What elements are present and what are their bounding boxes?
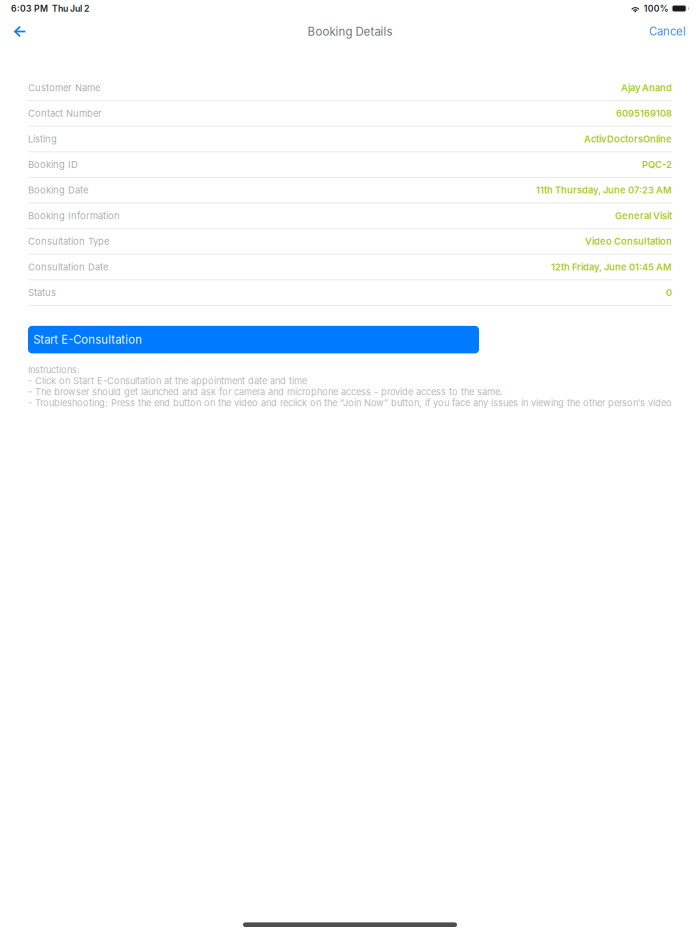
staticText: 11th Thursday, June 07:23 AM <box>536 185 672 196</box>
staticText: Instructions: <box>28 364 80 376</box>
staticText: - The browser should get launched and as… <box>28 386 503 398</box>
staticText: Status <box>28 287 56 298</box>
staticText: 100% <box>644 3 669 14</box>
staticText: Consultation Type <box>28 236 109 247</box>
staticText: ActivDoctorsOnline <box>584 133 672 145</box>
staticText: Customer Name <box>28 82 100 93</box>
staticText: 0 <box>666 287 672 298</box>
staticText: Video Consultation <box>585 236 672 247</box>
staticText: PQC-2 <box>642 159 672 170</box>
staticText: 6095169108 <box>616 108 672 119</box>
button[interactable]: Cancel <box>637 18 700 45</box>
staticText: Booking Details <box>307 25 392 38</box>
staticText: Booking Information <box>28 210 120 221</box>
staticText: Ajay Anand <box>621 82 672 93</box>
staticText: Cancel <box>649 25 686 38</box>
button[interactable]: Start E-Consultation <box>28 326 479 353</box>
staticText: Thu Jul 2 <box>52 3 89 14</box>
staticText: Contact Number <box>28 108 102 119</box>
staticText: General Visit <box>615 210 672 221</box>
staticText: Start E-Consultation <box>33 333 142 346</box>
staticText: - Click on Start E-Consultation at the a… <box>28 375 307 387</box>
staticText: Consultation Date <box>28 261 108 273</box>
staticText: 6:03 PM <box>11 3 48 14</box>
staticText: Booking ID <box>28 159 78 170</box>
staticText: - Troubleshooting: Press the end button … <box>28 397 672 408</box>
button[interactable]: Back <box>0 18 38 44</box>
staticText: 12th Friday, June 01:45 AM <box>551 261 672 273</box>
staticText: Booking Date <box>28 185 88 196</box>
staticText: Listing <box>28 133 57 145</box>
